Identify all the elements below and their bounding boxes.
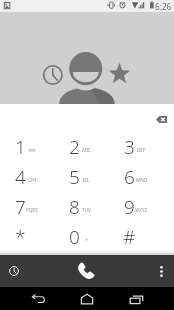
- button[interactable]: 3: [109, 132, 164, 162]
- staticText: WXYZ: [135, 207, 148, 213]
- staticText: 0: [69, 224, 80, 250]
- button[interactable]: 8: [54, 192, 109, 222]
- button[interactable]: 5: [54, 162, 109, 192]
- button[interactable]: 9: [109, 192, 164, 222]
- button[interactable]: *: [0, 222, 54, 252]
- staticText: 7: [15, 194, 26, 220]
- button[interactable]: Backspace: [150, 110, 172, 128]
- staticText: 3: [124, 134, 135, 160]
- button[interactable]: Call: [72, 257, 100, 285]
- button[interactable]: 6: [109, 162, 164, 192]
- staticText: 6:26: [155, 1, 172, 12]
- button[interactable]: 4: [0, 162, 54, 192]
- staticText: 8: [69, 194, 80, 220]
- staticText: PQRS: [26, 207, 38, 213]
- staticText: TUV: [82, 207, 91, 213]
- staticText: JKL: [83, 177, 90, 183]
- staticText: ABC: [82, 147, 91, 153]
- button[interactable]: More options: [150, 260, 172, 282]
- staticText: 9: [124, 194, 135, 220]
- staticText: 6: [124, 164, 135, 190]
- button[interactable]: 1: [0, 132, 54, 162]
- staticText: DEF: [137, 147, 146, 153]
- staticText: 4: [15, 164, 26, 190]
- staticText: 5: [69, 164, 80, 190]
- staticText: MNO: [136, 177, 148, 183]
- button[interactable]: 2: [54, 132, 109, 162]
- staticText: 2: [69, 134, 80, 160]
- staticText: GHI: [28, 177, 37, 183]
- button[interactable]: #: [109, 222, 164, 252]
- button[interactable]: Back: [26, 287, 50, 310]
- staticText: *: [15, 224, 26, 250]
- button[interactable]: Recent apps: [124, 287, 148, 310]
- staticText: 1: [15, 134, 26, 160]
- staticText: #: [123, 224, 136, 250]
- button[interactable]: 7: [0, 192, 54, 222]
- button[interactable]: Home: [75, 287, 99, 310]
- button[interactable]: Call history: [3, 260, 25, 282]
- staticText: +: [85, 237, 88, 243]
- button[interactable]: 0: [54, 222, 109, 252]
